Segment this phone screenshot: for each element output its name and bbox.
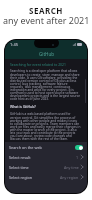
button[interactable]: Select result (5, 152, 87, 162)
staticText: Search on the web (9, 145, 42, 150)
staticText: 1:45 (10, 42, 18, 47)
staticText: Select region (9, 175, 33, 180)
staticText: GitHub is a web-based platform used for … (10, 112, 81, 141)
button[interactable]: Select time (5, 162, 87, 172)
staticText: Any region (60, 175, 79, 180)
button[interactable]: Select region (5, 172, 87, 182)
staticText: Searching is a developer platform that a… (10, 69, 81, 101)
staticText: 1 (76, 155, 79, 160)
button[interactable]: Search on the web (5, 142, 87, 152)
staticText: GitHub (39, 51, 54, 57)
staticText: SEARCH (29, 5, 63, 16)
staticText: Select result (9, 155, 31, 160)
staticText: Any time (64, 165, 79, 170)
staticText: Searching for event related to 2021 (10, 62, 66, 67)
button[interactable]: GitHub (5, 49, 87, 59)
staticText: Select time (9, 165, 29, 170)
staticText: What is GitHub? (10, 104, 36, 109)
staticText: any event after 2021 (3, 14, 90, 26)
